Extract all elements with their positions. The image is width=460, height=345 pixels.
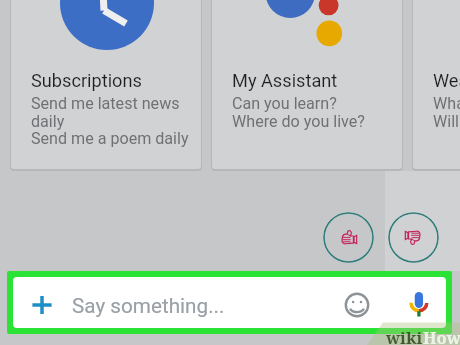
button[interactable]: Add <box>13 277 446 328</box>
button[interactable]: Thumbs down <box>388 212 439 263</box>
staticText: Weather <box>433 70 460 91</box>
staticText: How <box>423 326 460 345</box>
button[interactable]: Thumbs up <box>323 212 374 263</box>
button[interactable]: Weather <box>413 0 460 169</box>
staticText: Subscriptions <box>31 70 142 91</box>
button[interactable]: Voice input <box>400 285 434 319</box>
staticText: wiki <box>386 326 423 345</box>
button[interactable]: My Assistant <box>212 0 402 169</box>
button[interactable]: Emoji <box>343 291 371 319</box>
button[interactable]: Subscriptions <box>11 0 201 169</box>
staticText: Can you learn? Where do you live? <box>232 94 365 131</box>
staticText: Say something... <box>72 294 225 318</box>
button[interactable]: Add <box>25 288 59 322</box>
staticText: What's the weather? Will it rain today? <box>433 94 460 131</box>
staticText: Send me latest news daily Send me a poem… <box>31 94 189 148</box>
staticText: My Assistant <box>232 70 338 91</box>
